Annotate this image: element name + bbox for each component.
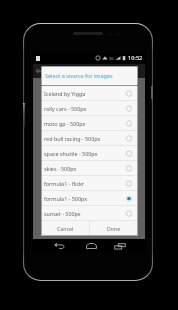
button[interactable]: Iceland by Yigga [41, 86, 138, 101]
staticText: rally cars - 500px [44, 105, 121, 112]
staticText: formula1 - flickr [44, 180, 121, 187]
staticText: Iceland by Yigga [44, 90, 121, 97]
button[interactable]: Back [47, 239, 71, 253]
staticText: Done [107, 225, 121, 232]
staticText: skies - 500px [44, 165, 121, 172]
button[interactable]: Recent apps [108, 239, 132, 253]
staticText: 3G [109, 56, 114, 61]
staticText: Cancel [57, 225, 74, 232]
staticText: 10:52 [128, 54, 143, 62]
button[interactable]: space shuttle - 500px [41, 146, 138, 161]
staticText: sunset - 500px [44, 210, 121, 217]
staticText: space shuttle - 500px [44, 150, 121, 157]
button[interactable]: red bull racing - 500px [41, 131, 138, 146]
button[interactable]: rally cars - 500px [41, 101, 138, 116]
staticText: formula1 - 500px [44, 195, 121, 202]
button[interactable]: moto gp - 500px [41, 116, 138, 131]
staticText: red bull racing - 500px [44, 135, 121, 142]
button[interactable]: Home [79, 239, 103, 253]
button[interactable]: skies - 500px [41, 161, 138, 176]
button[interactable]: formula1 - 500px [41, 191, 138, 206]
staticText: Select a source for images [45, 72, 113, 79]
button[interactable]: formula1 - flickr [41, 176, 138, 191]
button[interactable]: Done [90, 221, 138, 236]
button[interactable]: sunset - 500px [41, 206, 138, 221]
button[interactable]: Cancel [41, 221, 89, 236]
staticText: moto gp - 500px [44, 120, 121, 127]
